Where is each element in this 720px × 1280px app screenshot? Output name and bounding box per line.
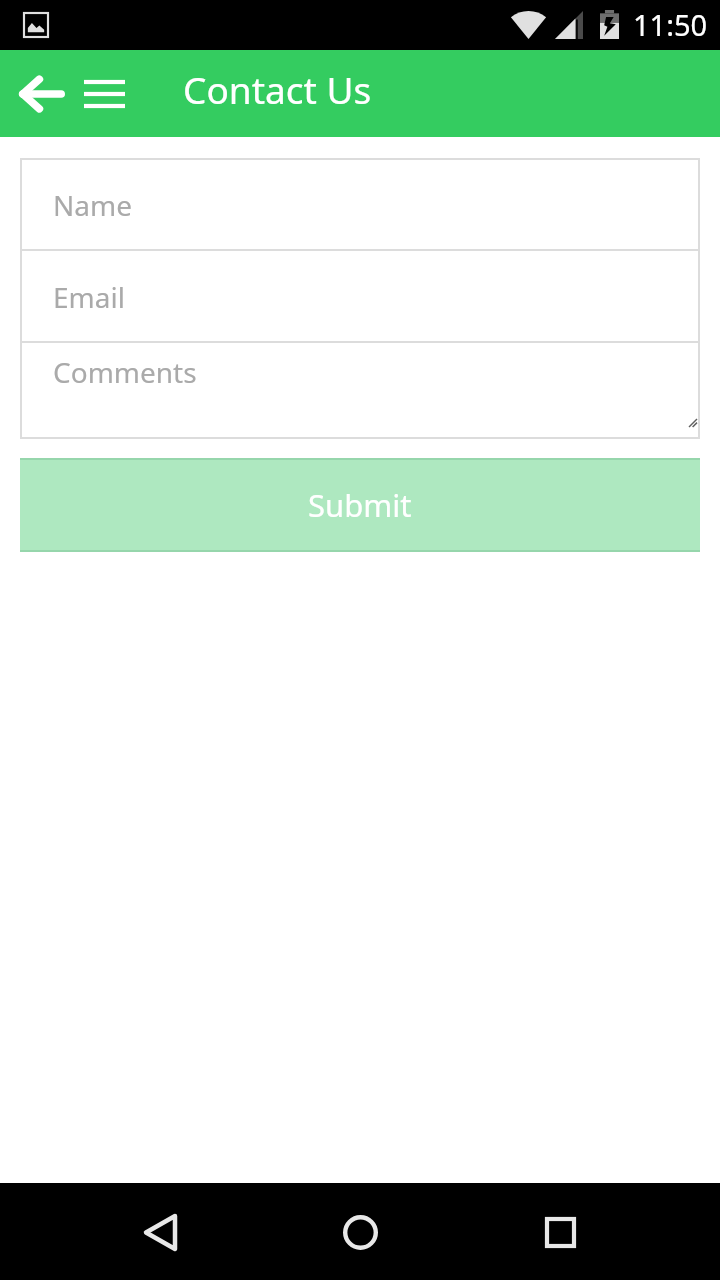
staticText: Comments — [53, 353, 197, 391]
button[interactable]: Back — [130, 1202, 190, 1262]
staticText: 11:50 — [633, 5, 708, 44]
staticText: Email — [53, 278, 125, 316]
button[interactable]: Recent apps — [530, 1202, 590, 1262]
button[interactable]: Name — [20, 158, 700, 251]
staticText: Contact Us — [183, 64, 372, 114]
button[interactable]: Comments — [20, 343, 700, 439]
button[interactable]: Submit — [20, 458, 700, 552]
button[interactable]: Open navigation menu — [84, 77, 125, 111]
button[interactable]: Email — [20, 251, 700, 343]
button[interactable]: Home — [330, 1202, 390, 1262]
staticText: Name — [53, 186, 132, 224]
staticText: Submit — [308, 484, 412, 526]
button[interactable]: Navigate up — [19, 72, 65, 116]
